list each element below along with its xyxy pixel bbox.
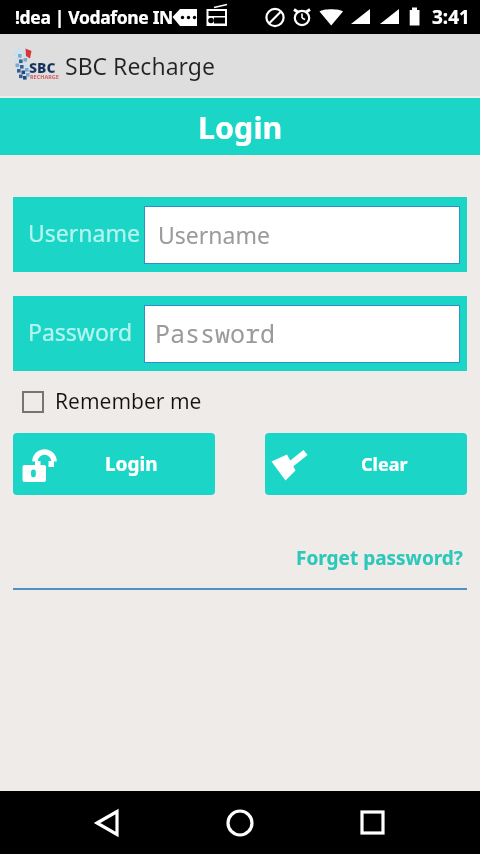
staticText: RECHARGE: [30, 73, 59, 80]
button[interactable]: Recents: [347, 797, 399, 849]
staticText: Username: [28, 217, 140, 248]
staticText: 3:41: [432, 4, 470, 30]
button[interactable]: Home: [214, 797, 266, 849]
staticText: Clear: [361, 452, 408, 477]
staticText: Remember me: [55, 387, 202, 416]
staticText: Username: [158, 219, 270, 250]
button[interactable]: Password: [144, 305, 460, 363]
button[interactable]: Username: [144, 206, 460, 264]
staticText: SBC Recharge: [65, 50, 215, 81]
staticText: SBC: [29, 58, 56, 77]
button[interactable]: Forget password?: [279, 541, 480, 575]
button[interactable]: Remember me: [22, 381, 202, 422]
staticText: Password: [155, 316, 276, 350]
button[interactable]: Login: [13, 433, 215, 495]
button[interactable]: Back: [81, 797, 133, 849]
staticText: Login: [105, 451, 158, 477]
staticText: Login: [198, 106, 283, 148]
staticText: !dea | Vodafone IN: [15, 5, 173, 29]
button[interactable]: Clear: [265, 433, 467, 495]
staticText: Password: [28, 316, 133, 347]
